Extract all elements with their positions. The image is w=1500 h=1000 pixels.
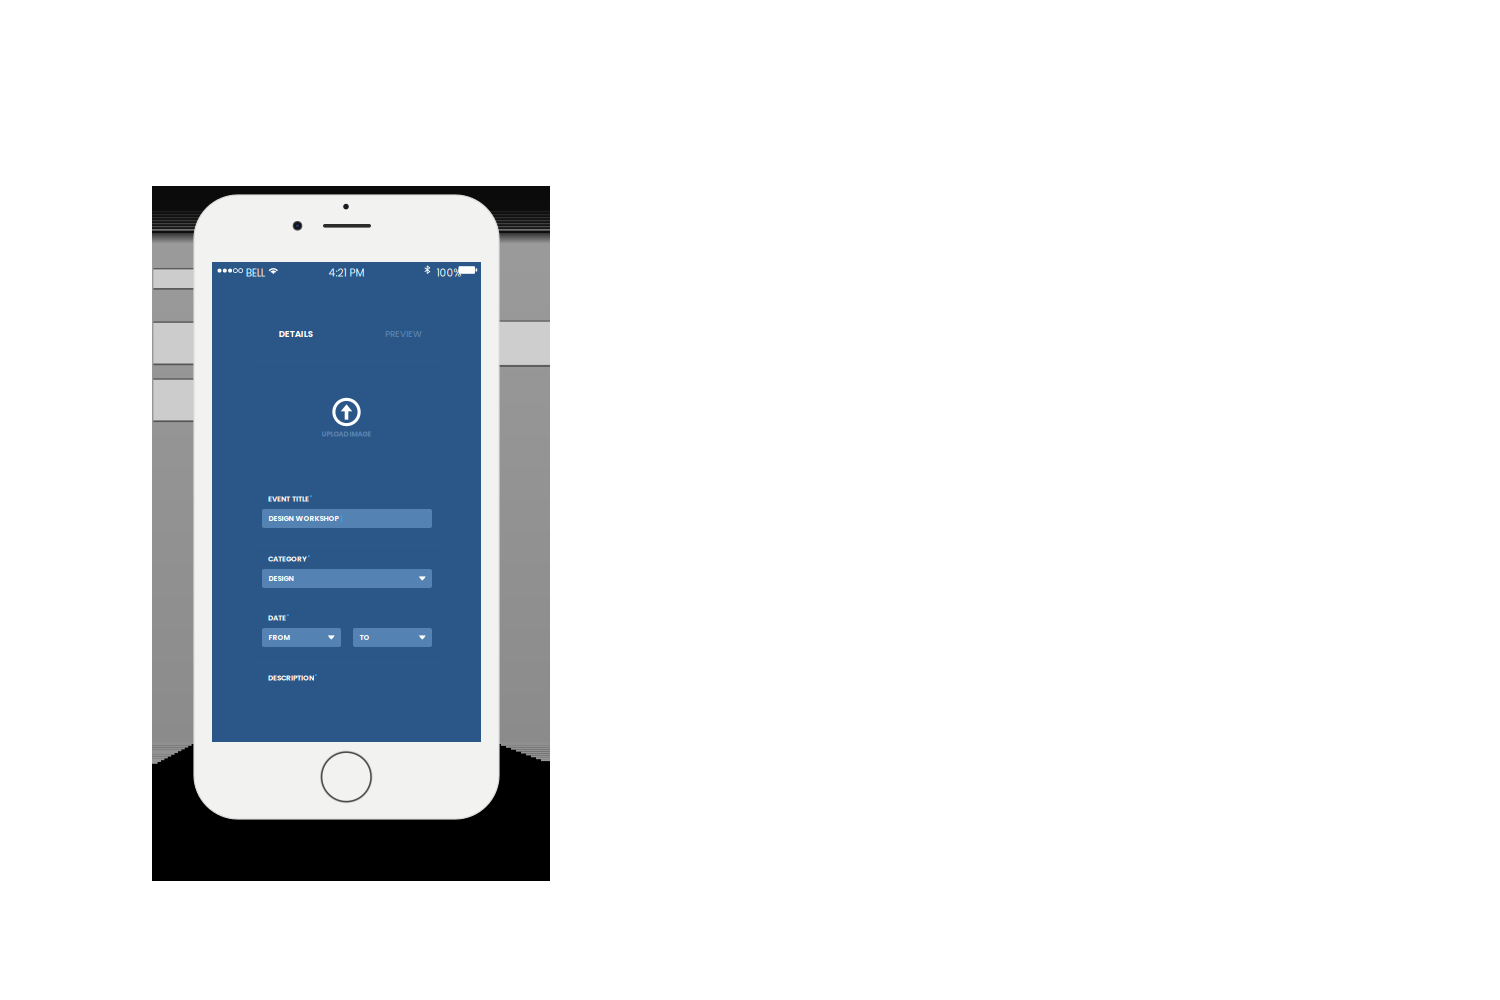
staticText: DETAILS [279,328,313,340]
staticText: 100% [437,266,462,280]
staticText: DATE [268,613,286,623]
staticText: FROM [268,632,290,643]
staticText: DESIGN WORKSHOP [268,513,338,524]
staticText: EVENT TITLE [268,494,309,504]
button[interactable]: FROM [262,628,341,647]
staticText: TO [359,632,369,643]
button[interactable]: DETAILS [234,321,358,347]
staticText: BELL [246,266,265,280]
staticText: CATEGORY [268,554,307,564]
button[interactable]: DESIGN [262,569,432,588]
staticText: DESIGN [268,573,293,584]
button[interactable]: DESIGN WORKSHOP [262,509,432,528]
button[interactable]: PREVIEW [341,321,465,347]
button[interactable]: TO [353,628,432,647]
staticText: 4:21 PM [328,266,364,280]
staticText: DESCRIPTION [268,673,314,683]
staticText: UPLOAD IMAGE [321,429,371,439]
staticText: PREVIEW [385,328,422,340]
button[interactable]: Upload image [332,398,361,426]
